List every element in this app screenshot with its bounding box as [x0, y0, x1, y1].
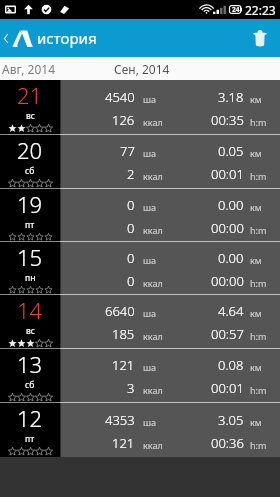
staticText: 126: [112, 111, 135, 129]
staticText: ккал: [143, 277, 163, 289]
staticText: h:m: [250, 277, 267, 289]
button[interactable]: 19: [0, 189, 280, 241]
staticText: ша: [143, 254, 157, 266]
staticText: h:m: [250, 170, 267, 182]
staticText: сб: [25, 379, 35, 391]
staticText: 4540: [105, 88, 135, 106]
staticText: Авг, 2014: [2, 61, 55, 77]
staticText: 20: [17, 135, 43, 165]
staticText: ша: [143, 93, 157, 105]
staticText: 4.64: [218, 302, 244, 320]
staticText: ша: [143, 416, 157, 428]
staticText: пт: [25, 433, 35, 445]
staticText: 3: [127, 379, 135, 397]
staticText: 12: [17, 403, 43, 433]
button[interactable]: история: [0, 19, 105, 57]
staticText: 00:01: [211, 379, 244, 397]
staticText: 00:00: [211, 219, 244, 237]
staticText: ша: [143, 307, 157, 319]
staticText: 22:23: [245, 2, 276, 18]
button[interactable]: Сен, 2014: [107, 57, 177, 80]
staticText: сб: [25, 165, 35, 177]
staticText: h:m: [250, 384, 267, 396]
staticText: пн: [25, 272, 36, 284]
staticText: h:m: [250, 224, 267, 236]
staticText: км: [250, 416, 262, 428]
staticText: 77: [120, 142, 135, 160]
staticText: ша: [143, 147, 157, 159]
staticText: Сен, 2014: [114, 61, 170, 77]
staticText: 121: [112, 356, 135, 374]
button[interactable]: 12: [0, 403, 280, 457]
staticText: 3.05: [218, 411, 244, 429]
staticText: 3.18: [218, 88, 244, 106]
staticText: ккал: [143, 224, 163, 236]
staticText: 24: [232, 5, 240, 14]
staticText: 21: [17, 80, 43, 110]
button[interactable]: 15: [0, 242, 280, 294]
staticText: 15: [17, 242, 43, 272]
staticText: 00:35: [211, 111, 244, 129]
staticText: 0.08: [218, 356, 244, 374]
button[interactable]: Авг, 2014: [0, 57, 56, 80]
staticText: 0.00: [218, 249, 244, 267]
staticText: ша: [143, 361, 157, 373]
button[interactable]: 21: [0, 80, 280, 134]
button[interactable]: 14: [0, 295, 280, 348]
staticText: км: [250, 147, 262, 159]
staticText: 4353: [105, 411, 135, 429]
staticText: 00:00: [211, 272, 244, 290]
staticText: ккал: [143, 330, 163, 342]
staticText: 19: [17, 189, 43, 219]
staticText: км: [250, 254, 262, 266]
staticText: 00:36: [211, 434, 244, 452]
staticText: 6640: [105, 302, 135, 320]
staticText: 13: [17, 349, 43, 379]
staticText: 00:01: [211, 165, 244, 183]
staticText: ккал: [143, 384, 163, 396]
staticText: ккал: [143, 116, 163, 128]
staticText: км: [250, 93, 262, 105]
staticText: h:m: [250, 439, 267, 451]
staticText: 00:57: [211, 325, 244, 343]
staticText: 0: [127, 196, 135, 214]
staticText: ккал: [143, 439, 163, 451]
staticText: 0: [127, 272, 135, 290]
staticText: 0.00: [218, 196, 244, 214]
staticText: 0.05: [218, 142, 244, 160]
staticText: ккал: [143, 170, 163, 182]
staticText: 185: [112, 325, 135, 343]
staticText: пт: [25, 219, 35, 231]
staticText: 0: [127, 249, 135, 267]
staticText: 14: [17, 295, 43, 325]
staticText: км: [250, 307, 262, 319]
button[interactable]: 13: [0, 349, 280, 402]
staticText: вс: [26, 110, 35, 122]
staticText: h:m: [250, 330, 267, 342]
staticText: 121: [112, 434, 135, 452]
staticText: км: [250, 361, 262, 373]
staticText: h:m: [250, 116, 267, 128]
staticText: история: [37, 28, 97, 48]
staticText: км: [250, 201, 262, 213]
staticText: 2: [127, 165, 135, 183]
staticText: 0: [127, 219, 135, 237]
staticText: ша: [143, 201, 157, 213]
button[interactable]: 20: [0, 135, 280, 188]
button[interactable]: Delete: [240, 19, 280, 57]
staticText: вс: [26, 325, 35, 337]
